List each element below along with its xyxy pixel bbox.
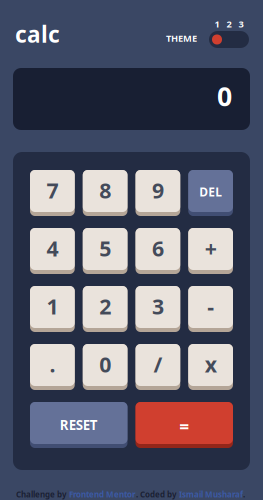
button[interactable]: Theme switch [209, 31, 249, 48]
staticText: DEL [199, 184, 222, 200]
button[interactable]: - [188, 286, 233, 332]
staticText: x [205, 350, 217, 378]
staticText: Ismail Musharaf [179, 489, 243, 500]
button[interactable]: 1 [30, 286, 75, 332]
staticText: . [49, 350, 55, 378]
staticText: Challenge by [16, 489, 69, 500]
staticText: THEME [166, 32, 197, 44]
staticText: 9 [152, 176, 164, 204]
button[interactable]: = [135, 402, 233, 448]
button[interactable]: 7 [30, 170, 75, 216]
staticText: 1 [46, 292, 58, 320]
staticText: 0 [99, 350, 111, 378]
button[interactable]: 6 [135, 228, 180, 274]
button[interactable]: x [188, 344, 233, 390]
button[interactable]: 2 [83, 286, 128, 332]
button[interactable]: RESET [30, 402, 127, 448]
staticText: 6 [152, 234, 164, 262]
staticText: RESET [60, 416, 98, 434]
button[interactable]: 9 [135, 170, 180, 216]
staticText: 0 [217, 78, 232, 114]
staticText: + [205, 234, 217, 262]
staticText: 3 [152, 292, 164, 320]
button[interactable]: / [135, 344, 180, 390]
button[interactable]: 4 [30, 228, 75, 274]
staticText: 1 [214, 18, 219, 30]
staticText: . Coded by [136, 489, 179, 500]
staticText: Frontend Mentor [69, 489, 136, 500]
button[interactable]: Frontend Mentor [69, 489, 136, 500]
button[interactable]: 3 [135, 286, 180, 332]
staticText: 2 [99, 292, 111, 320]
button[interactable]: Ismail Musharaf [179, 489, 243, 500]
button[interactable]: 5 [83, 228, 128, 274]
staticText: / [153, 350, 162, 378]
staticText: 3 [238, 18, 243, 30]
button[interactable]: 8 [83, 170, 128, 216]
button[interactable]: . [30, 344, 75, 390]
staticText: calc [15, 19, 60, 49]
button[interactable]: + [188, 228, 233, 274]
staticText: 5 [99, 234, 111, 262]
staticText: - [207, 292, 214, 320]
staticText: 8 [99, 176, 111, 204]
staticText: 4 [46, 234, 58, 262]
staticText: . [243, 489, 245, 500]
staticText: = [179, 415, 189, 438]
button[interactable]: 0 [83, 344, 128, 390]
button[interactable]: DEL [188, 170, 233, 216]
staticText: 2 [226, 18, 231, 30]
staticText: 7 [46, 176, 58, 204]
